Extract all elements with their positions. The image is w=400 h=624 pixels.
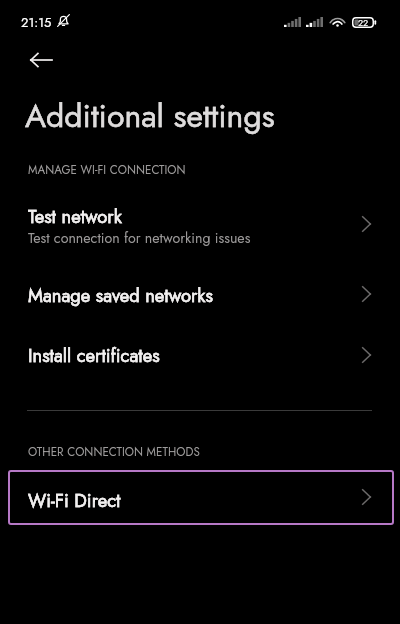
button[interactable] xyxy=(0,336,400,380)
button[interactable]: Back xyxy=(17,36,65,84)
staticText: 22 xyxy=(358,16,369,29)
staticText: MANAGE WI-FI CONNECTION xyxy=(28,162,186,179)
staticText: Test connection for networking issues xyxy=(28,228,251,249)
button[interactable] xyxy=(0,275,400,319)
staticText: Test network xyxy=(28,203,122,230)
staticText: OTHER CONNECTION METHODS xyxy=(28,444,200,461)
staticText: Test network xyxy=(28,203,122,230)
staticText: 21:15 xyxy=(21,13,52,32)
staticText: Additional settings xyxy=(25,93,275,139)
button[interactable] xyxy=(0,196,400,250)
staticText: Manage saved networks xyxy=(28,282,213,309)
staticText: Manage saved networks xyxy=(28,282,213,309)
staticText: Additional settings xyxy=(25,93,275,139)
staticText: Install certificates xyxy=(28,342,160,369)
button[interactable]: Wi-Fi Direct xyxy=(8,470,394,525)
staticText: Wi-Fi Direct xyxy=(28,487,121,514)
staticText: Install certificates xyxy=(28,342,160,369)
staticText: Wi-Fi Direct xyxy=(28,487,121,514)
